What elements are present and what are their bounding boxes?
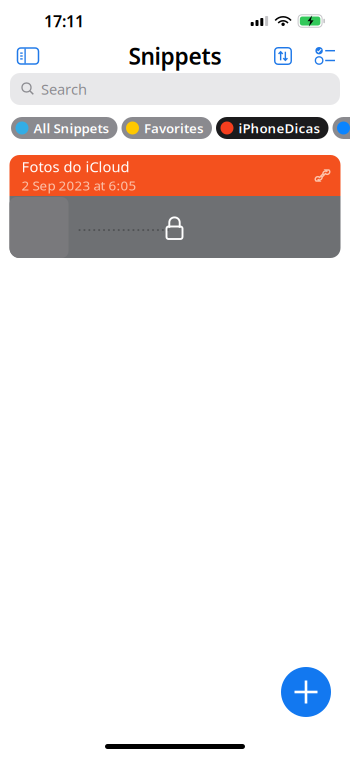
button[interactable]: Search xyxy=(10,73,340,105)
staticText: 2 Sep 2023 at 6:05 xyxy=(21,176,136,194)
staticText: All Snippets xyxy=(33,119,109,137)
button[interactable]: Favorites xyxy=(121,117,212,139)
staticText: Snippets xyxy=(128,41,221,71)
button[interactable]: New Snippet xyxy=(281,667,331,717)
staticText: 17:11 xyxy=(44,10,84,32)
staticText: Fotos do iCloud xyxy=(21,157,129,176)
staticText: iPhoneDicas xyxy=(238,119,320,137)
button[interactable]: Fotos do iCloud xyxy=(9,155,340,258)
button[interactable]: Select Snippets xyxy=(309,40,341,72)
staticText: Search xyxy=(41,79,87,99)
button[interactable]: Show Sidebar xyxy=(11,40,45,72)
button[interactable]: Blue xyxy=(332,117,350,139)
button[interactable]: iPhoneDicas xyxy=(216,117,328,139)
staticText: Favorites xyxy=(144,119,204,137)
button[interactable]: All Snippets xyxy=(11,117,117,139)
button[interactable]: Sort Snippets xyxy=(257,40,309,72)
